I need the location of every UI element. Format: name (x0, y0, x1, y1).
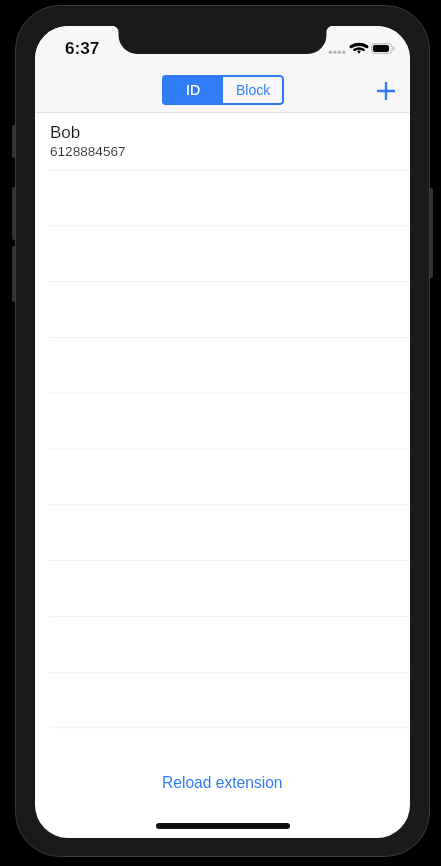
staticText: ID (186, 82, 200, 98)
staticText: Block (236, 82, 271, 98)
staticText: Bob (50, 123, 81, 142)
staticText: 6:37 (65, 38, 100, 57)
staticText: 6128884567 (50, 144, 126, 159)
button[interactable]: Bob (35, 26, 410, 170)
button[interactable]: ID (162, 75, 223, 105)
button[interactable]: Add (364, 70, 408, 112)
button[interactable]: Block (223, 75, 284, 105)
button[interactable]: Reload extension (35, 770, 410, 794)
staticText: Reload extension (162, 774, 283, 791)
